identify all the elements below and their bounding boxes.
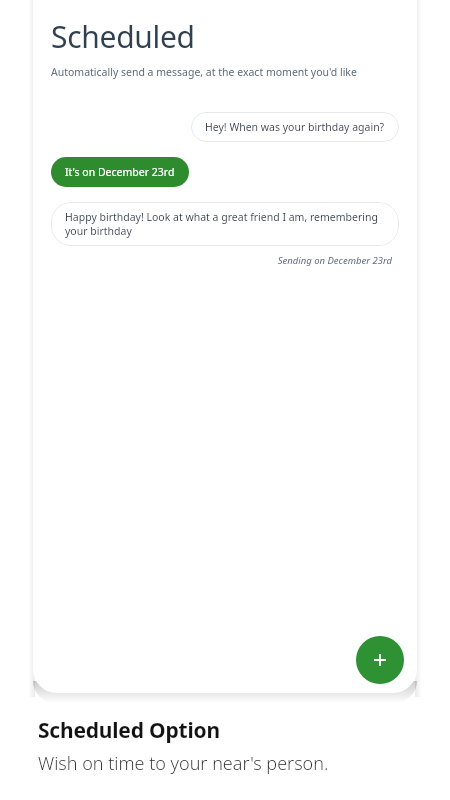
button[interactable]: Hey! When was your birthday again? bbox=[191, 112, 399, 142]
staticText: Automatically send a message, at the exa… bbox=[51, 65, 357, 79]
button[interactable]: Add scheduled message bbox=[356, 636, 404, 684]
staticText: Hey! When was your birthday again? bbox=[205, 120, 385, 134]
button[interactable]: Happy birthday! Look at what a great fri… bbox=[51, 202, 399, 246]
staticText: It's on December 23rd bbox=[65, 165, 175, 179]
staticText: Scheduled bbox=[51, 16, 195, 57]
staticText: Wish on time to your near's person. bbox=[38, 751, 329, 776]
button[interactable]: It's on December 23rd bbox=[51, 157, 189, 187]
staticText: Sending on December 23rd bbox=[277, 254, 392, 267]
staticText: Happy birthday! Look at what a great fri… bbox=[65, 210, 385, 238]
staticText: Scheduled Option bbox=[38, 716, 220, 745]
